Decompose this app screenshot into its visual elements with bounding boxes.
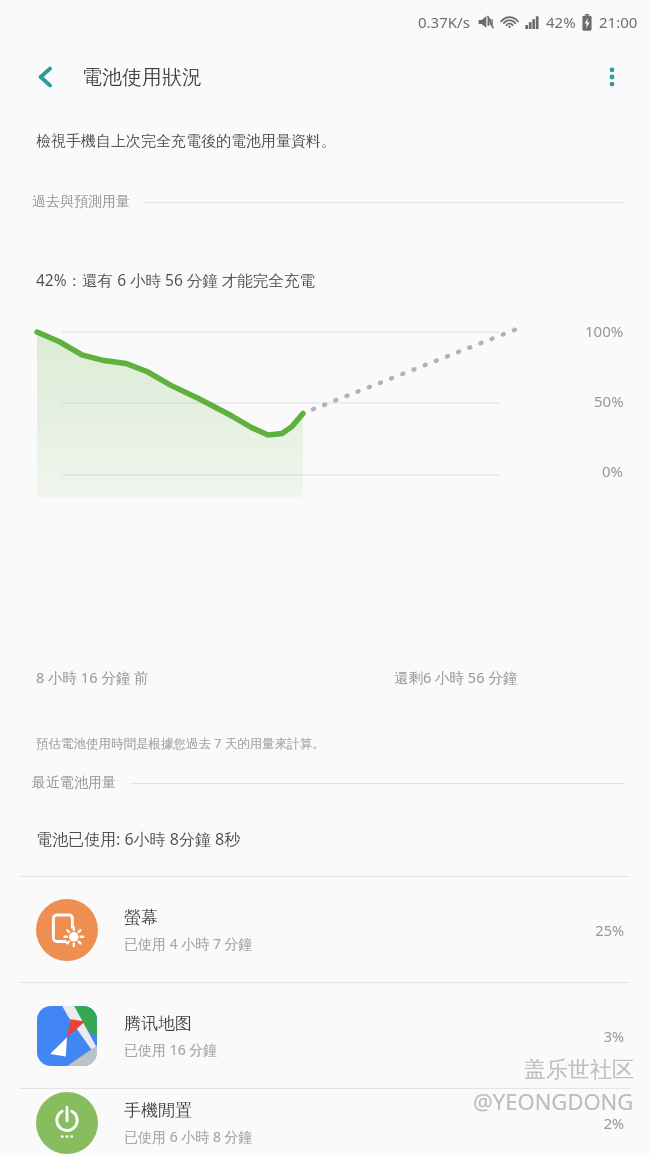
staticText: 已使用 16 分鐘 — [124, 1040, 218, 1059]
button[interactable]: Back — [20, 51, 72, 103]
button[interactable]: 螢幕 — [0, 877, 650, 982]
staticText: 50% — [594, 391, 624, 411]
staticText: 還剩6 小時 56 分鐘 — [394, 667, 518, 687]
staticText: 過去與預測用量 — [32, 193, 130, 211]
staticText: 0.37K/s — [418, 12, 470, 32]
staticText: 100% — [585, 321, 624, 341]
staticText: 已使用 4 小時 7 分鐘 — [124, 934, 253, 953]
staticText: 預估電池使用時間是根據您過去 7 天的用量來計算。 — [36, 735, 325, 752]
staticText: 最近電池用量 — [32, 774, 116, 792]
staticText: 8 小時 16 分鐘 前 — [36, 667, 149, 687]
button[interactable]: 腾讯地图 — [0, 983, 650, 1088]
staticText: 0% — [602, 461, 624, 481]
staticText: 已使用 6 小時 8 分鐘 — [124, 1127, 253, 1146]
staticText: 21:00 — [599, 12, 638, 32]
button[interactable]: More options — [588, 53, 636, 101]
staticText: 手機閒置 — [124, 1100, 192, 1121]
staticText: 電池使用狀況 — [82, 65, 202, 90]
staticText: @YEONGDONG — [473, 1086, 634, 1116]
staticText: 3% — [603, 1026, 624, 1046]
button[interactable]: 手機閒置 — [0, 1089, 650, 1156]
staticText: 螢幕 — [124, 907, 158, 928]
staticText: 2% — [603, 1113, 624, 1133]
staticText: 42% — [546, 12, 576, 32]
staticText: 檢視手機自上次完全充電後的電池用量資料。 — [36, 132, 336, 151]
staticText: 電池已使用: 6小時 8分鐘 8秒 — [36, 828, 241, 850]
staticText: 42%：還有 6 小時 56 分鐘 才能完全充電 — [36, 269, 315, 290]
staticText: 25% — [595, 920, 624, 940]
staticText: 盖乐世社区 — [524, 1056, 634, 1084]
staticText: 腾讯地图 — [124, 1013, 192, 1034]
